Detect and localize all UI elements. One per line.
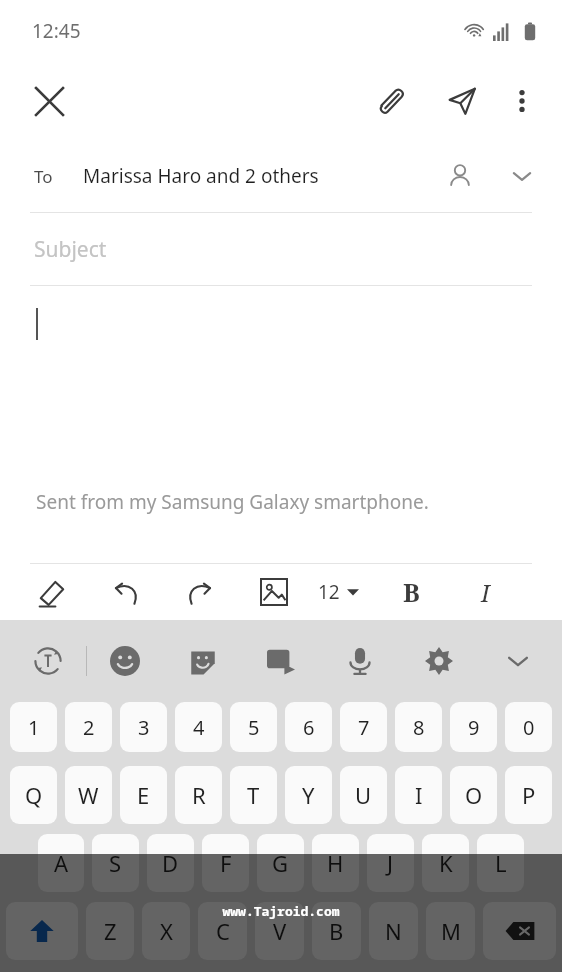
staticText: K (439, 848, 453, 878)
staticText: Subject (34, 235, 107, 264)
staticText: F (220, 848, 232, 878)
button[interactable]: To (0, 140, 562, 212)
staticText: 6 (303, 714, 315, 741)
staticText: V (273, 916, 287, 946)
button[interactable]: B (387, 568, 435, 616)
button[interactable]: Undo (100, 566, 152, 618)
button[interactable]: 0 (505, 702, 552, 752)
button[interactable]: 2 (65, 702, 112, 752)
button[interactable]: Translate (24, 637, 72, 685)
button[interactable]: D (147, 834, 194, 892)
button[interactable]: Shift (6, 902, 78, 960)
button[interactable]: Pen (26, 566, 78, 618)
button[interactable]: Voice input (336, 637, 384, 685)
staticText: 0 (523, 714, 535, 741)
staticText: Sent from my Samsung Galaxy smartphone. (36, 489, 429, 515)
staticText: L (495, 848, 507, 878)
button[interactable]: C (198, 902, 247, 960)
staticText: 4 (193, 714, 205, 741)
staticText: Y (302, 780, 315, 810)
button[interactable]: R (175, 766, 222, 824)
button[interactable]: Contacts (436, 152, 484, 200)
button[interactable]: Sent from my Samsung Galaxy smartphone. (0, 286, 562, 563)
button[interactable]: W (65, 766, 112, 824)
staticText: C (216, 916, 230, 946)
staticText: I (481, 576, 490, 609)
button[interactable]: T (230, 766, 277, 824)
button[interactable]: Emoji (101, 637, 149, 685)
staticText: 7 (358, 714, 370, 741)
button[interactable]: Send (436, 75, 488, 127)
button[interactable]: GIF (257, 637, 305, 685)
button[interactable]: K (422, 834, 469, 892)
button[interactable]: Close (22, 74, 76, 128)
button[interactable]: 4 (175, 702, 222, 752)
button[interactable]: N (369, 902, 418, 960)
staticText: 3 (138, 714, 150, 741)
staticText: B (403, 575, 420, 609)
staticText: A (54, 848, 69, 878)
staticText: S (109, 848, 122, 878)
button[interactable]: Hide keyboard (494, 637, 542, 685)
button[interactable]: 9 (450, 702, 497, 752)
button[interactable]: O (450, 766, 497, 824)
staticText: J (387, 848, 394, 878)
button[interactable]: Backspace (483, 902, 556, 960)
button[interactable]: Insert image (248, 566, 300, 618)
staticText: 5 (248, 714, 260, 741)
staticText: O (465, 780, 483, 810)
staticText: 12 (318, 579, 340, 605)
button[interactable]: 1 (10, 702, 57, 752)
button[interactable]: P (505, 766, 552, 824)
button[interactable]: Keyboard settings (415, 637, 463, 685)
staticText: U (355, 780, 372, 810)
staticText: N (385, 916, 402, 946)
button[interactable]: M (426, 902, 475, 960)
button[interactable]: S (92, 834, 139, 892)
staticText: To (34, 165, 53, 188)
button[interactable]: 6 (285, 702, 332, 752)
button[interactable]: 3 (120, 702, 167, 752)
staticText: H (327, 848, 344, 878)
button[interactable]: Attach (366, 75, 418, 127)
button[interactable]: E (120, 766, 167, 824)
button[interactable]: Q (10, 766, 57, 824)
staticText: 8 (413, 714, 425, 741)
button[interactable]: I (395, 766, 442, 824)
staticText: M (441, 916, 461, 946)
staticText: P (522, 780, 536, 810)
staticText: www.Tajroid.com (0, 902, 562, 920)
staticText: Z (104, 916, 117, 946)
button[interactable]: H (312, 834, 359, 892)
button[interactable]: A (38, 834, 84, 892)
staticText: 2 (83, 714, 95, 741)
button[interactable]: G (257, 834, 304, 892)
staticText: X (160, 916, 173, 946)
button[interactable]: J (367, 834, 414, 892)
staticText: W (78, 780, 99, 810)
staticText: 12:45 (32, 18, 81, 44)
button[interactable]: 5 (230, 702, 277, 752)
staticText: B (329, 916, 344, 946)
button[interactable]: Stickers (179, 637, 227, 685)
button[interactable]: L (477, 834, 524, 892)
button[interactable]: I (461, 568, 509, 616)
button[interactable]: Expand recipients (498, 152, 546, 200)
staticText: 9 (468, 714, 480, 741)
staticText: I (415, 780, 423, 810)
button[interactable]: Redo (174, 566, 226, 618)
button[interactable]: B (312, 902, 361, 960)
button[interactable]: F (202, 834, 249, 892)
button[interactable]: 12 (312, 573, 365, 611)
button[interactable]: 7 (340, 702, 387, 752)
button[interactable]: X (142, 902, 190, 960)
button[interactable]: 8 (395, 702, 442, 752)
button[interactable]: V (255, 902, 304, 960)
staticText: Q (25, 780, 43, 810)
button[interactable]: Y (285, 766, 332, 824)
button[interactable]: Z (86, 902, 134, 960)
button[interactable]: Subject (0, 213, 562, 285)
button[interactable]: U (340, 766, 387, 824)
staticText: R (192, 780, 206, 810)
button[interactable]: More options (496, 75, 548, 127)
